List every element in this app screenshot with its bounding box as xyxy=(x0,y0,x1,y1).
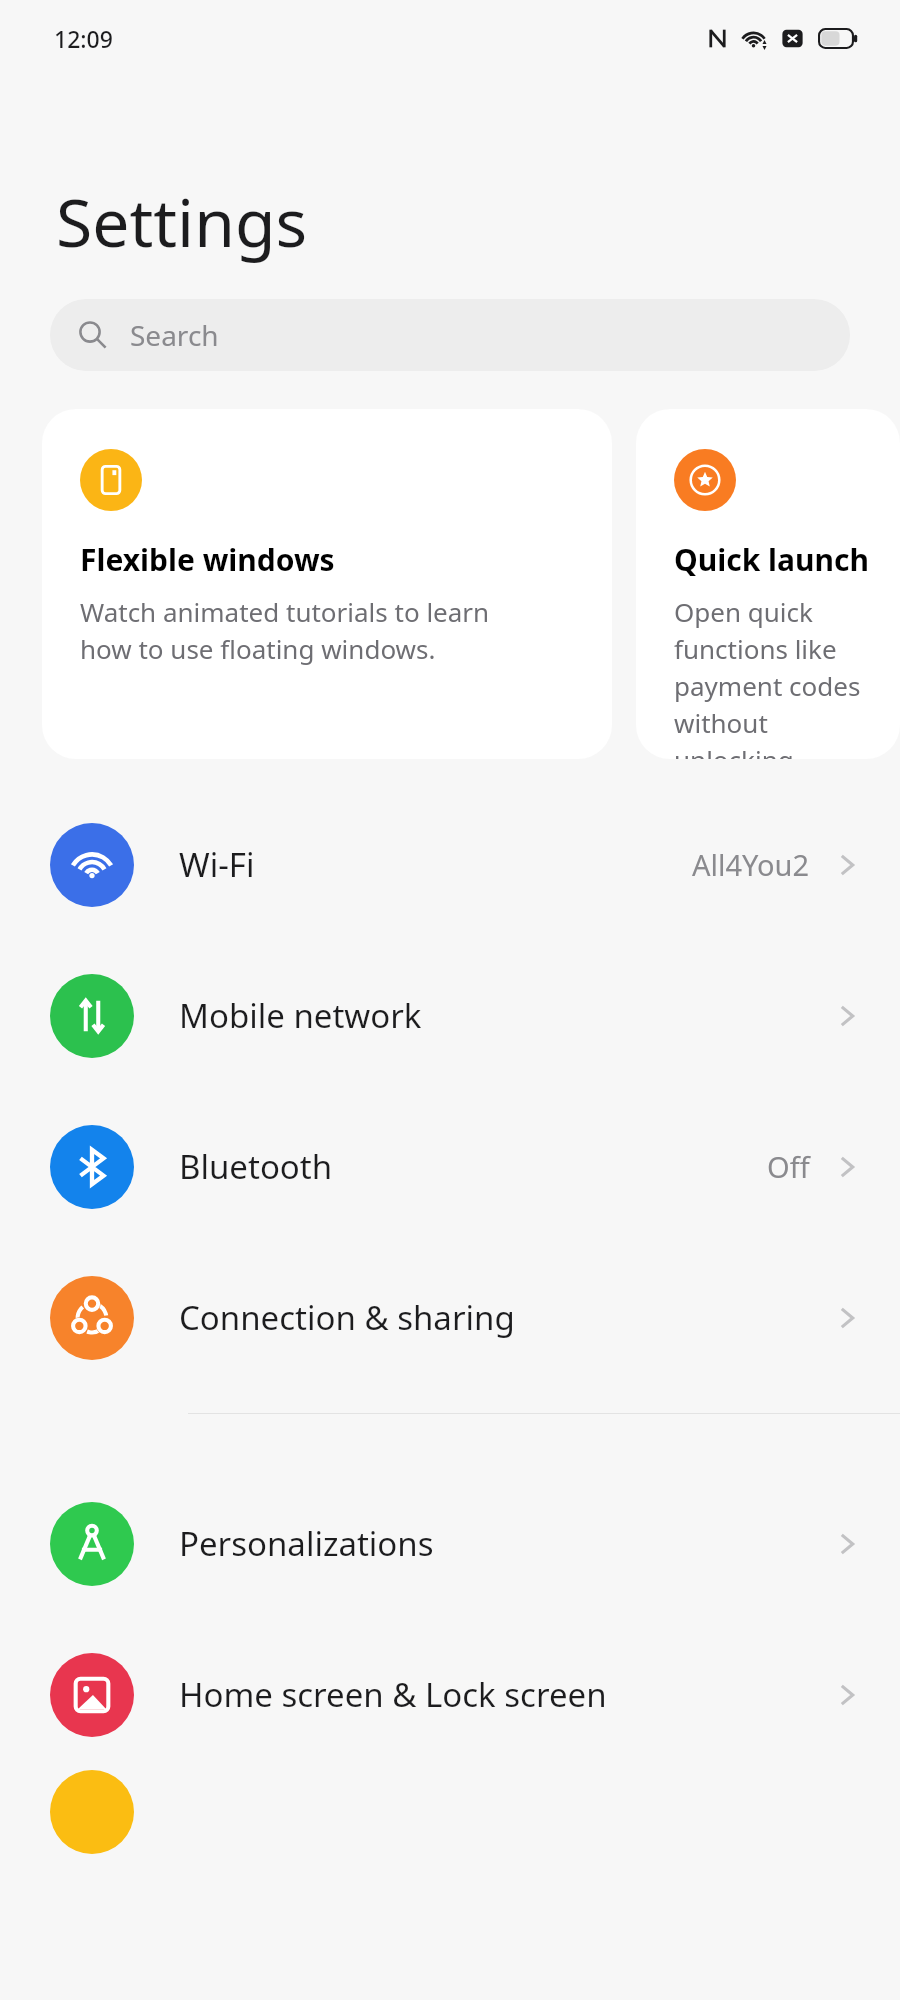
staticText: Flexible windows xyxy=(80,539,335,580)
button[interactable]: Bluetooth xyxy=(0,1091,900,1242)
staticText: Wi-Fi xyxy=(179,842,255,887)
button[interactable]: Home screen & Lock screen xyxy=(0,1619,900,1770)
button[interactable]: Wi-Fi xyxy=(0,789,900,940)
staticText: Connection & sharing xyxy=(179,1295,515,1340)
staticText: Mobile network xyxy=(179,993,422,1038)
button[interactable]: Connection & sharing xyxy=(0,1242,900,1393)
staticText: Personalizations xyxy=(179,1521,434,1566)
button[interactable]: Mobile network xyxy=(0,940,900,1091)
staticText: Quick launch xyxy=(674,539,869,580)
staticText: All4You2 xyxy=(692,845,810,884)
button[interactable]: Flexible windows xyxy=(42,409,612,759)
staticText: Home screen & Lock screen xyxy=(179,1672,607,1717)
button[interactable]: Personalizations xyxy=(0,1468,900,1619)
staticText: Search xyxy=(130,316,219,354)
staticText: Settings xyxy=(56,176,308,266)
button[interactable]: Search xyxy=(50,299,850,371)
staticText: Watch animated tutorials to learn how to… xyxy=(80,594,490,667)
button[interactable]: Quick launch xyxy=(636,409,900,759)
staticText: Off xyxy=(767,1147,810,1186)
staticText: 12:09 xyxy=(54,23,113,54)
staticText: Open quick functions like payment codes … xyxy=(674,594,876,759)
button[interactable] xyxy=(0,1770,900,1860)
staticText: Bluetooth xyxy=(179,1144,333,1189)
